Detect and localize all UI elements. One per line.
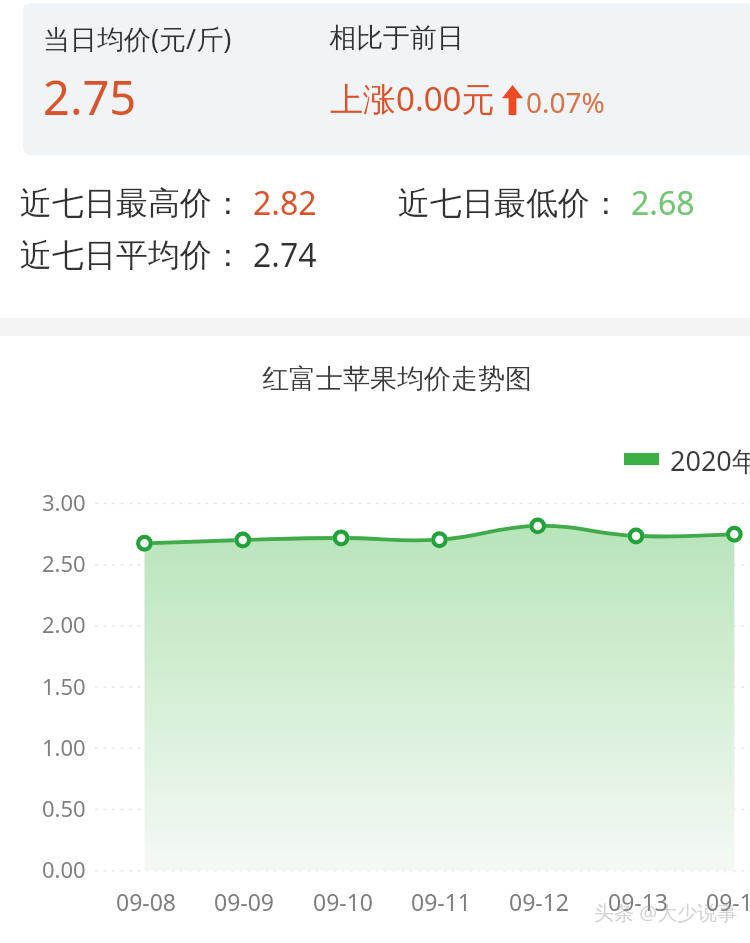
staticText: 2.74: [253, 233, 317, 277]
button[interactable]: 近七日最高价：: [20, 181, 317, 225]
staticText: 2.00: [42, 609, 86, 639]
staticText: 近七日平均价：: [20, 235, 244, 275]
staticText: 09-13: [608, 886, 669, 917]
staticText: 0.07%: [526, 83, 605, 121]
staticText: 1.00: [42, 732, 86, 762]
staticText: 09-10: [313, 886, 374, 917]
staticText: 2.75: [43, 65, 137, 129]
staticText: 1.50: [42, 671, 86, 701]
button[interactable]: 近七日平均价：: [20, 233, 317, 277]
other: 上涨: [502, 85, 523, 115]
staticText: 09-12: [509, 886, 570, 917]
button[interactable]: [23, 3, 750, 155]
staticText: 09-14: [706, 886, 750, 917]
staticText: 近七日最高价：: [20, 183, 244, 223]
staticText: 2.68: [631, 181, 695, 225]
staticText: 红富士苹果均价走势图: [262, 362, 532, 396]
button[interactable]: 近七日最低价：: [398, 181, 695, 225]
staticText: 0.00: [42, 854, 86, 884]
staticText: 2.82: [253, 181, 317, 225]
staticText: 09-11: [411, 886, 472, 917]
staticText: 3.00: [42, 487, 86, 517]
staticText: 上涨0.00元: [330, 76, 495, 121]
staticText: 近七日最低价：: [398, 183, 622, 223]
staticText: 相比于前日: [329, 21, 464, 55]
staticText: 2020年: [670, 442, 750, 479]
staticText: 09-09: [214, 886, 275, 917]
staticText: 2.50: [42, 548, 86, 578]
staticText: 09-08: [116, 886, 177, 917]
staticText: 当日均价(元/斤): [43, 20, 232, 57]
staticText: 0.50: [42, 793, 86, 823]
staticText: 头条 @大少说事: [594, 899, 738, 926]
